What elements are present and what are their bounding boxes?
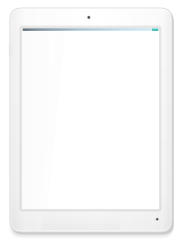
- button[interactable]: White tablet device mockup: [0, 0, 180, 240]
